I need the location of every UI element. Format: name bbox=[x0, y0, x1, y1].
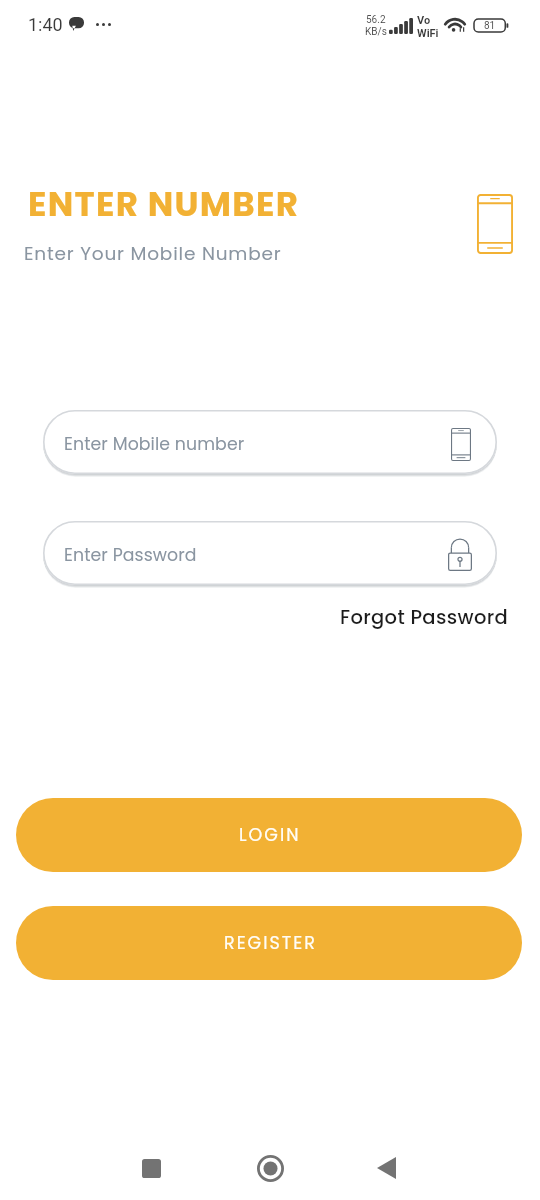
button[interactable]: Enter Mobile number bbox=[43, 410, 497, 474]
staticText: Enter Password bbox=[64, 543, 449, 567]
staticText: 56.2 bbox=[366, 14, 386, 26]
staticText: Forgot Password bbox=[340, 604, 509, 631]
staticText: Enter Mobile number bbox=[64, 432, 453, 456]
button[interactable]: REGISTER bbox=[16, 906, 522, 980]
button[interactable]: Back bbox=[356, 1138, 416, 1198]
button[interactable]: Enter Password bbox=[43, 521, 497, 585]
button[interactable]: Forgot Password bbox=[340, 604, 509, 631]
staticText: 1:40 bbox=[28, 14, 63, 35]
button[interactable]: Recents bbox=[121, 1138, 181, 1198]
staticText: Enter Your Mobile Number bbox=[24, 241, 282, 267]
staticText: 81 bbox=[484, 20, 496, 32]
staticText: LOGIN bbox=[239, 823, 301, 848]
staticText: REGISTER bbox=[224, 931, 317, 956]
button[interactable]: Home bbox=[240, 1138, 300, 1198]
staticText: KB/s bbox=[365, 26, 387, 38]
staticText: ENTER NUMBER bbox=[28, 180, 300, 228]
staticText: WiFi bbox=[417, 27, 439, 40]
staticText: Vo bbox=[417, 14, 431, 27]
button[interactable]: LOGIN bbox=[16, 798, 522, 872]
